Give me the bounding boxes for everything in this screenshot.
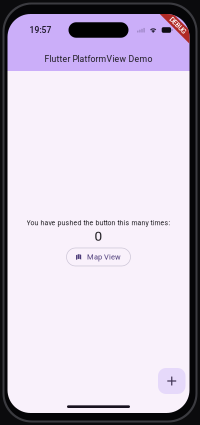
staticText: Map View bbox=[87, 253, 121, 261]
staticText: Flutter PlatformView Demo bbox=[44, 54, 152, 64]
button[interactable]: Map View bbox=[66, 248, 130, 266]
staticText: DEBUG bbox=[167, 22, 188, 29]
button[interactable]: Increment counter bbox=[158, 368, 185, 394]
staticText: You have pushed the button this many tim… bbox=[26, 219, 170, 227]
staticText: 19:57 bbox=[29, 25, 51, 35]
staticText: 0 bbox=[94, 228, 102, 244]
